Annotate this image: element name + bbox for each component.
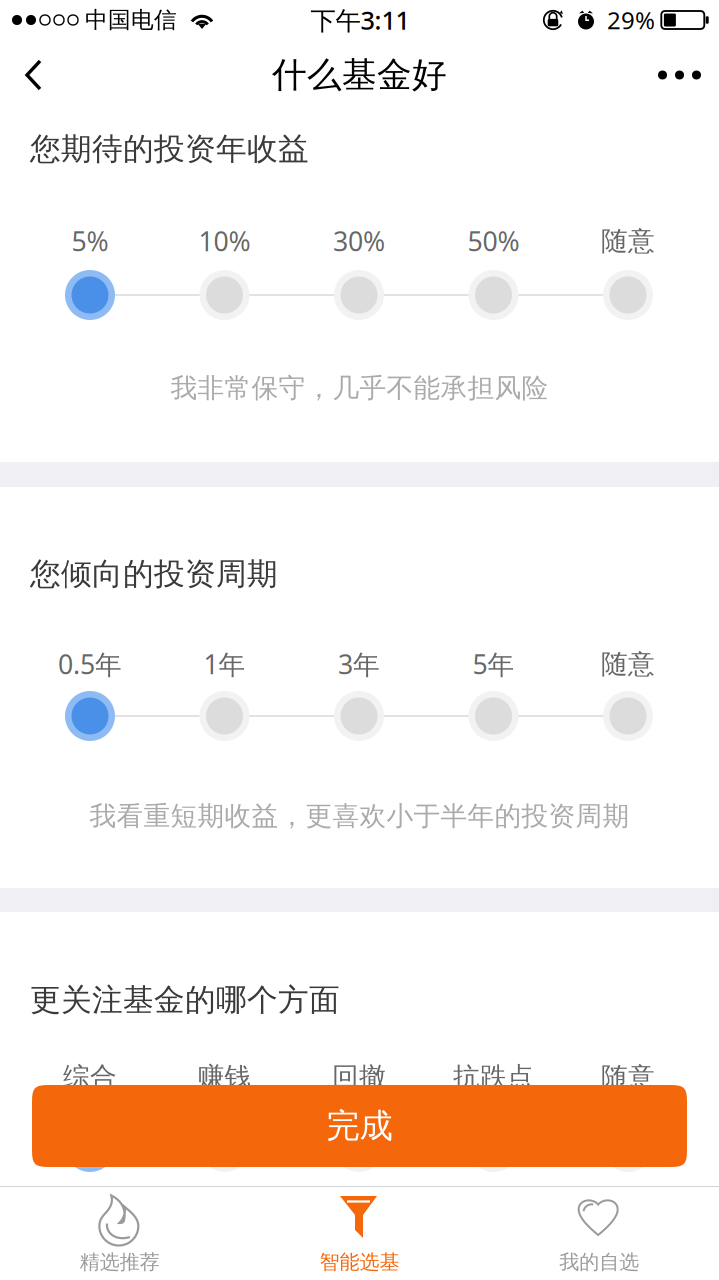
staticText: 抗跌点 xyxy=(453,1061,534,1093)
staticText: 随意 xyxy=(601,1061,655,1093)
button[interactable]: 精选推荐 xyxy=(0,1186,240,1280)
staticText: 回撤 xyxy=(332,1061,386,1093)
staticText: 随意 xyxy=(601,225,655,257)
button[interactable]: 完成 xyxy=(32,1085,687,1167)
staticText: 我的自选 xyxy=(559,1250,639,1274)
staticText: 您倾向的投资周期 xyxy=(30,555,278,593)
staticText: 30% xyxy=(333,223,385,259)
staticText: 0.5年 xyxy=(58,646,122,682)
staticText: 综合 xyxy=(63,1061,117,1093)
staticText: 5年 xyxy=(472,646,514,682)
staticText: 5% xyxy=(71,223,108,259)
staticText: 我非常保守，几乎不能承担风险 xyxy=(170,372,548,404)
staticText: 完成 xyxy=(326,1105,392,1146)
button[interactable]: More xyxy=(636,42,719,108)
staticText: 随意 xyxy=(601,648,655,680)
staticText: 50% xyxy=(467,223,519,259)
staticText: 智能选基 xyxy=(319,1250,399,1274)
button[interactable]: 我的自选 xyxy=(479,1186,719,1280)
staticText: 更关注基金的哪个方面 xyxy=(30,981,340,1019)
staticText: 10% xyxy=(198,223,250,259)
staticText: 您期待的投资年收益 xyxy=(30,130,309,168)
staticText: 什么基金好 xyxy=(272,54,447,96)
staticText: 3年 xyxy=(338,646,380,682)
staticText: 下午3:11 xyxy=(310,3,409,37)
staticText: 29% xyxy=(607,4,655,36)
staticText: 精选推荐 xyxy=(80,1250,160,1274)
staticText: 我看重短期收益，更喜欢小于半年的投资周期 xyxy=(89,800,629,832)
staticText: 1年 xyxy=(203,646,245,682)
button[interactable]: 智能选基 xyxy=(240,1186,479,1280)
staticText: 赚钱 xyxy=(197,1061,251,1093)
button[interactable]: Back xyxy=(0,42,70,108)
staticText: 中国电信 xyxy=(85,6,177,34)
